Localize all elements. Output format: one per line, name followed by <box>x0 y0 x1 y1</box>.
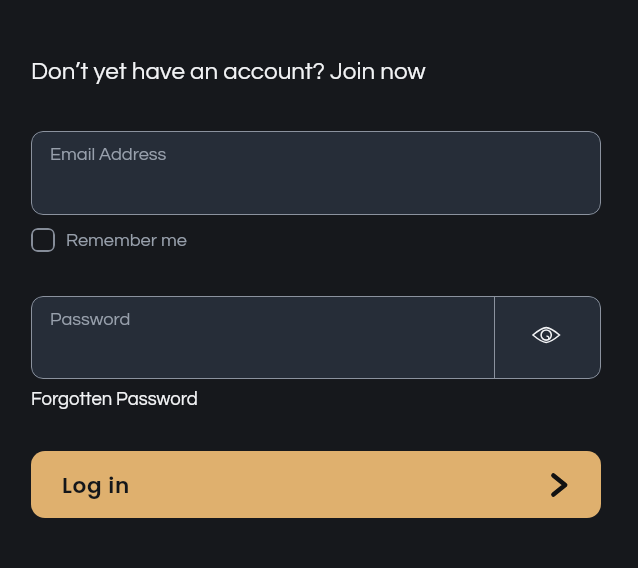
button[interactable]: Don’t yet have an account? Join now <box>31 59 426 84</box>
staticText: Remember me <box>66 231 187 250</box>
staticText: Email Address <box>50 145 167 164</box>
staticText: Don’t yet have an account? Join now <box>31 59 426 84</box>
button[interactable]: Show password <box>494 296 601 379</box>
button[interactable]: Password <box>31 296 494 379</box>
button[interactable]: Forgotten Password <box>31 390 198 409</box>
staticText: Log in <box>62 470 130 500</box>
button[interactable]: Remember me <box>31 228 187 252</box>
staticText: Password <box>50 310 131 329</box>
button[interactable]: Email Address <box>31 131 601 215</box>
button[interactable]: Log in <box>31 451 601 518</box>
